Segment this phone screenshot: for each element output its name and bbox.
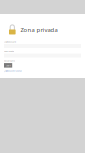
staticText: Login de usuario — [4, 40, 16, 43]
staticText: ¿Olvidó su contraseña? — [4, 70, 22, 72]
staticText: Zona privada — [21, 26, 58, 34]
staticText: Login — [6, 64, 11, 67]
staticText: Recuérdame — [4, 59, 15, 62]
staticText: Contraseña — [4, 50, 14, 52]
